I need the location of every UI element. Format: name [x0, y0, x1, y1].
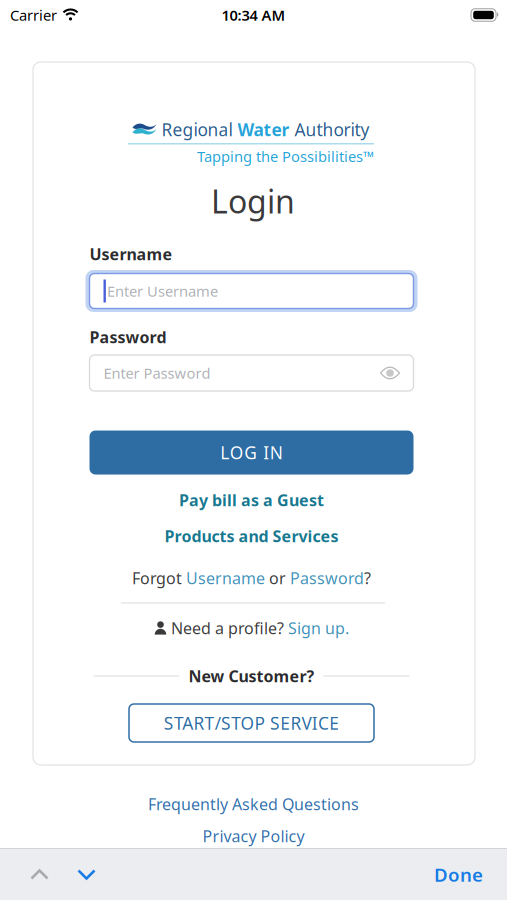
button[interactable]: Frequently Asked Questions: [148, 793, 359, 815]
button[interactable]: Done: [434, 862, 483, 887]
staticText: Authority: [294, 118, 369, 141]
staticText: Enter Password: [103, 363, 210, 383]
staticText: Password: [290, 567, 364, 589]
staticText: Done: [434, 862, 483, 887]
staticText: Sign up.: [288, 617, 349, 639]
button[interactable]: Privacy Policy: [202, 825, 304, 847]
staticText: Forgot: [132, 567, 186, 589]
staticText: Water: [237, 118, 294, 141]
staticText: ?: [364, 567, 371, 589]
button[interactable]: Products and Services: [164, 525, 338, 547]
staticText: Products and Services: [164, 525, 338, 547]
button[interactable]: Next field: [77, 869, 96, 880]
button[interactable]: Show password: [380, 367, 399, 379]
staticText: Username: [186, 567, 265, 589]
button[interactable]: Pay bill as a Guest: [179, 489, 324, 511]
staticText: Frequently Asked Questions: [148, 793, 359, 815]
staticText: Login: [211, 180, 295, 222]
staticText: Enter Username: [107, 281, 218, 301]
button[interactable]: Previous field: [30, 869, 49, 880]
staticText: LOG IN: [220, 441, 283, 464]
staticText: or: [265, 567, 290, 589]
staticText: Privacy Policy: [202, 825, 304, 847]
staticText: START/STOP SERVICE: [164, 711, 339, 734]
staticText: Need a profile?: [171, 617, 288, 639]
button[interactable]: Need a profile?: [154, 617, 349, 639]
staticText: Pay bill as a Guest: [179, 489, 324, 511]
button[interactable]: LOG IN: [89, 430, 413, 474]
staticText: New Customer?: [188, 665, 314, 687]
button[interactable]: Forgot: [132, 567, 371, 589]
staticText: Carrier: [10, 5, 57, 25]
staticText: Username: [89, 243, 172, 265]
button[interactable]: START/STOP SERVICE: [129, 704, 374, 742]
staticText: Regional: [161, 118, 237, 141]
staticText: Password: [89, 326, 166, 348]
staticText: 10:34 AM: [221, 5, 285, 25]
staticText: Tapping the Possibilities™: [197, 146, 374, 166]
